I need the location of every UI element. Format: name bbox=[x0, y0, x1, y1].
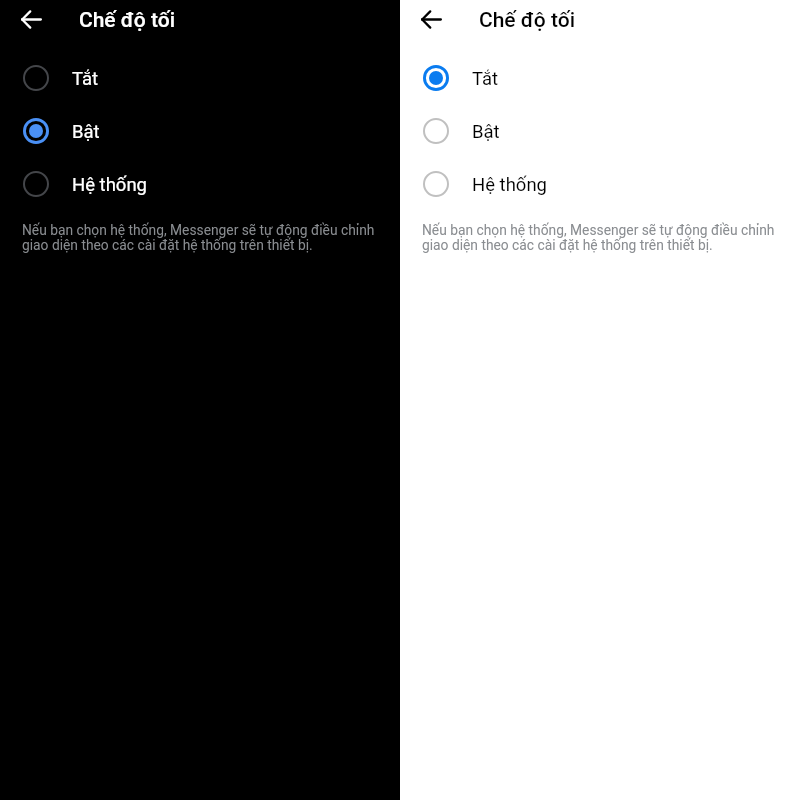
button[interactable]: Bật bbox=[400, 104, 800, 157]
button[interactable]: Hệ thống bbox=[400, 157, 800, 210]
button[interactable]: Hệ thống bbox=[0, 157, 400, 210]
button[interactable]: Back bbox=[410, 0, 453, 39]
staticText: Chế độ tối bbox=[79, 8, 176, 33]
button[interactable]: Tắt bbox=[0, 51, 400, 104]
button[interactable]: Tắt bbox=[400, 51, 800, 104]
staticText: Hệ thống bbox=[472, 174, 547, 196]
staticText: Tắt bbox=[472, 68, 499, 90]
staticText: Bật bbox=[472, 121, 500, 143]
staticText: Nếu bạn chọn hệ thống, Messenger sẽ tự đ… bbox=[422, 222, 784, 253]
button[interactable]: Back bbox=[10, 0, 53, 39]
staticText: Chế độ tối bbox=[479, 8, 576, 33]
staticText: Hệ thống bbox=[72, 174, 147, 196]
staticText: Bật bbox=[72, 121, 100, 143]
button[interactable]: Bật bbox=[0, 104, 400, 157]
staticText: Tắt bbox=[72, 68, 99, 90]
staticText: Nếu bạn chọn hệ thống, Messenger sẽ tự đ… bbox=[22, 222, 384, 253]
